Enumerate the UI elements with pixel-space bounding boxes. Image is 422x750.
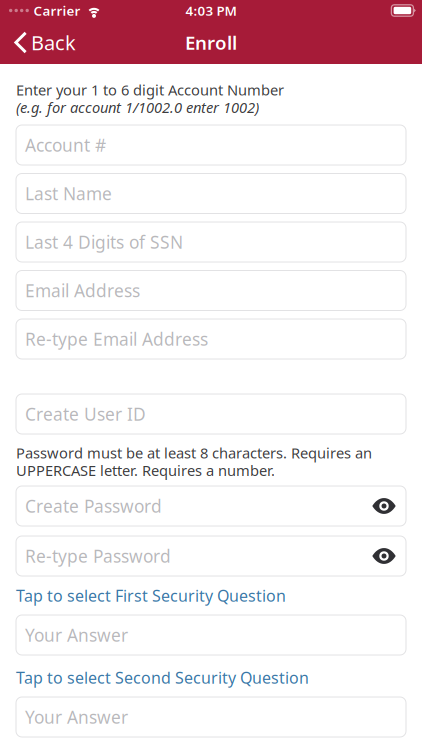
staticText: Back	[31, 29, 76, 56]
button[interactable]: Show password	[360, 486, 396, 525]
staticText: (e.g. for account 1/1002.0 enter 1002)	[16, 98, 259, 117]
staticText: Last Name	[25, 182, 112, 205]
button[interactable]: Tap to select Second Security Question	[16, 667, 406, 688]
staticText: Tap to select Second Security Question	[16, 667, 309, 688]
staticText: Enter your 1 to 6 digit Account Number	[16, 80, 284, 100]
staticText: Tap to select First Security Question	[16, 585, 286, 606]
staticText: Your Answer	[25, 623, 128, 646]
staticText: Re-type Password	[25, 544, 171, 567]
staticText: 4:03 PM	[185, 2, 236, 19]
staticText: Email Address	[25, 279, 140, 302]
staticText: Re-type Email Address	[25, 327, 208, 350]
button[interactable]: Back	[0, 21, 86, 64]
staticText: Create User ID	[25, 402, 146, 425]
staticText: Enroll	[185, 30, 237, 55]
button[interactable]: Show password	[360, 536, 396, 575]
staticText: Last 4 Digits of SSN	[25, 230, 183, 253]
button[interactable]: Tap to select First Security Question	[16, 585, 406, 606]
staticText: Password must be at least 8 characters. …	[16, 443, 372, 463]
staticText: Create Password	[25, 494, 162, 517]
staticText: UPPERCASE letter. Requires a number.	[16, 461, 275, 480]
staticText: Carrier	[33, 2, 80, 19]
staticText: Your Answer	[25, 705, 128, 728]
staticText: Account #	[25, 133, 106, 156]
